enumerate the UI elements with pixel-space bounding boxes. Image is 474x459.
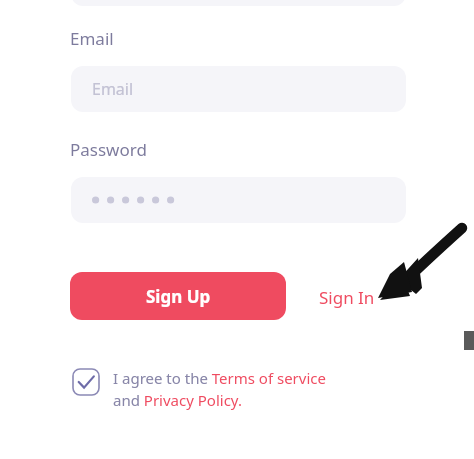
- button[interactable]: I agree to the terms: [72, 368, 100, 396]
- staticText: Sign Up: [146, 285, 211, 308]
- staticText: I agree to the Terms of service and Priv…: [113, 368, 326, 411]
- staticText: Email: [70, 27, 114, 50]
- button[interactable]: Password field: [71, 177, 406, 223]
- staticText: Email: [92, 78, 134, 100]
- button[interactable]: Email: [71, 66, 406, 112]
- staticText: Sign In: [319, 286, 375, 309]
- staticText: Password: [70, 138, 147, 161]
- button[interactable]: Sign Up: [70, 272, 286, 320]
- button[interactable]: Sign In: [313, 282, 369, 305]
